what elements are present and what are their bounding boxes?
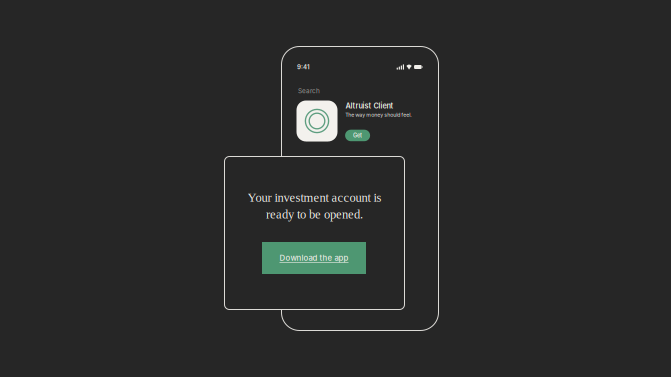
- button[interactable]: Download the app: [262, 242, 366, 274]
- staticText: Your investment account is: [247, 190, 381, 204]
- staticText: Download the app: [279, 253, 348, 263]
- button[interactable]: Get Altruist Client: [345, 130, 370, 141]
- staticText: 9:41: [297, 63, 310, 71]
- staticText: Altruist Client: [345, 101, 393, 110]
- staticText: Get: [353, 132, 362, 139]
- staticText: The way money should feel.: [345, 112, 411, 118]
- staticText: Search: [298, 87, 320, 95]
- staticText: ready to be opened.: [266, 207, 363, 221]
- button[interactable]: Search: [298, 87, 320, 95]
